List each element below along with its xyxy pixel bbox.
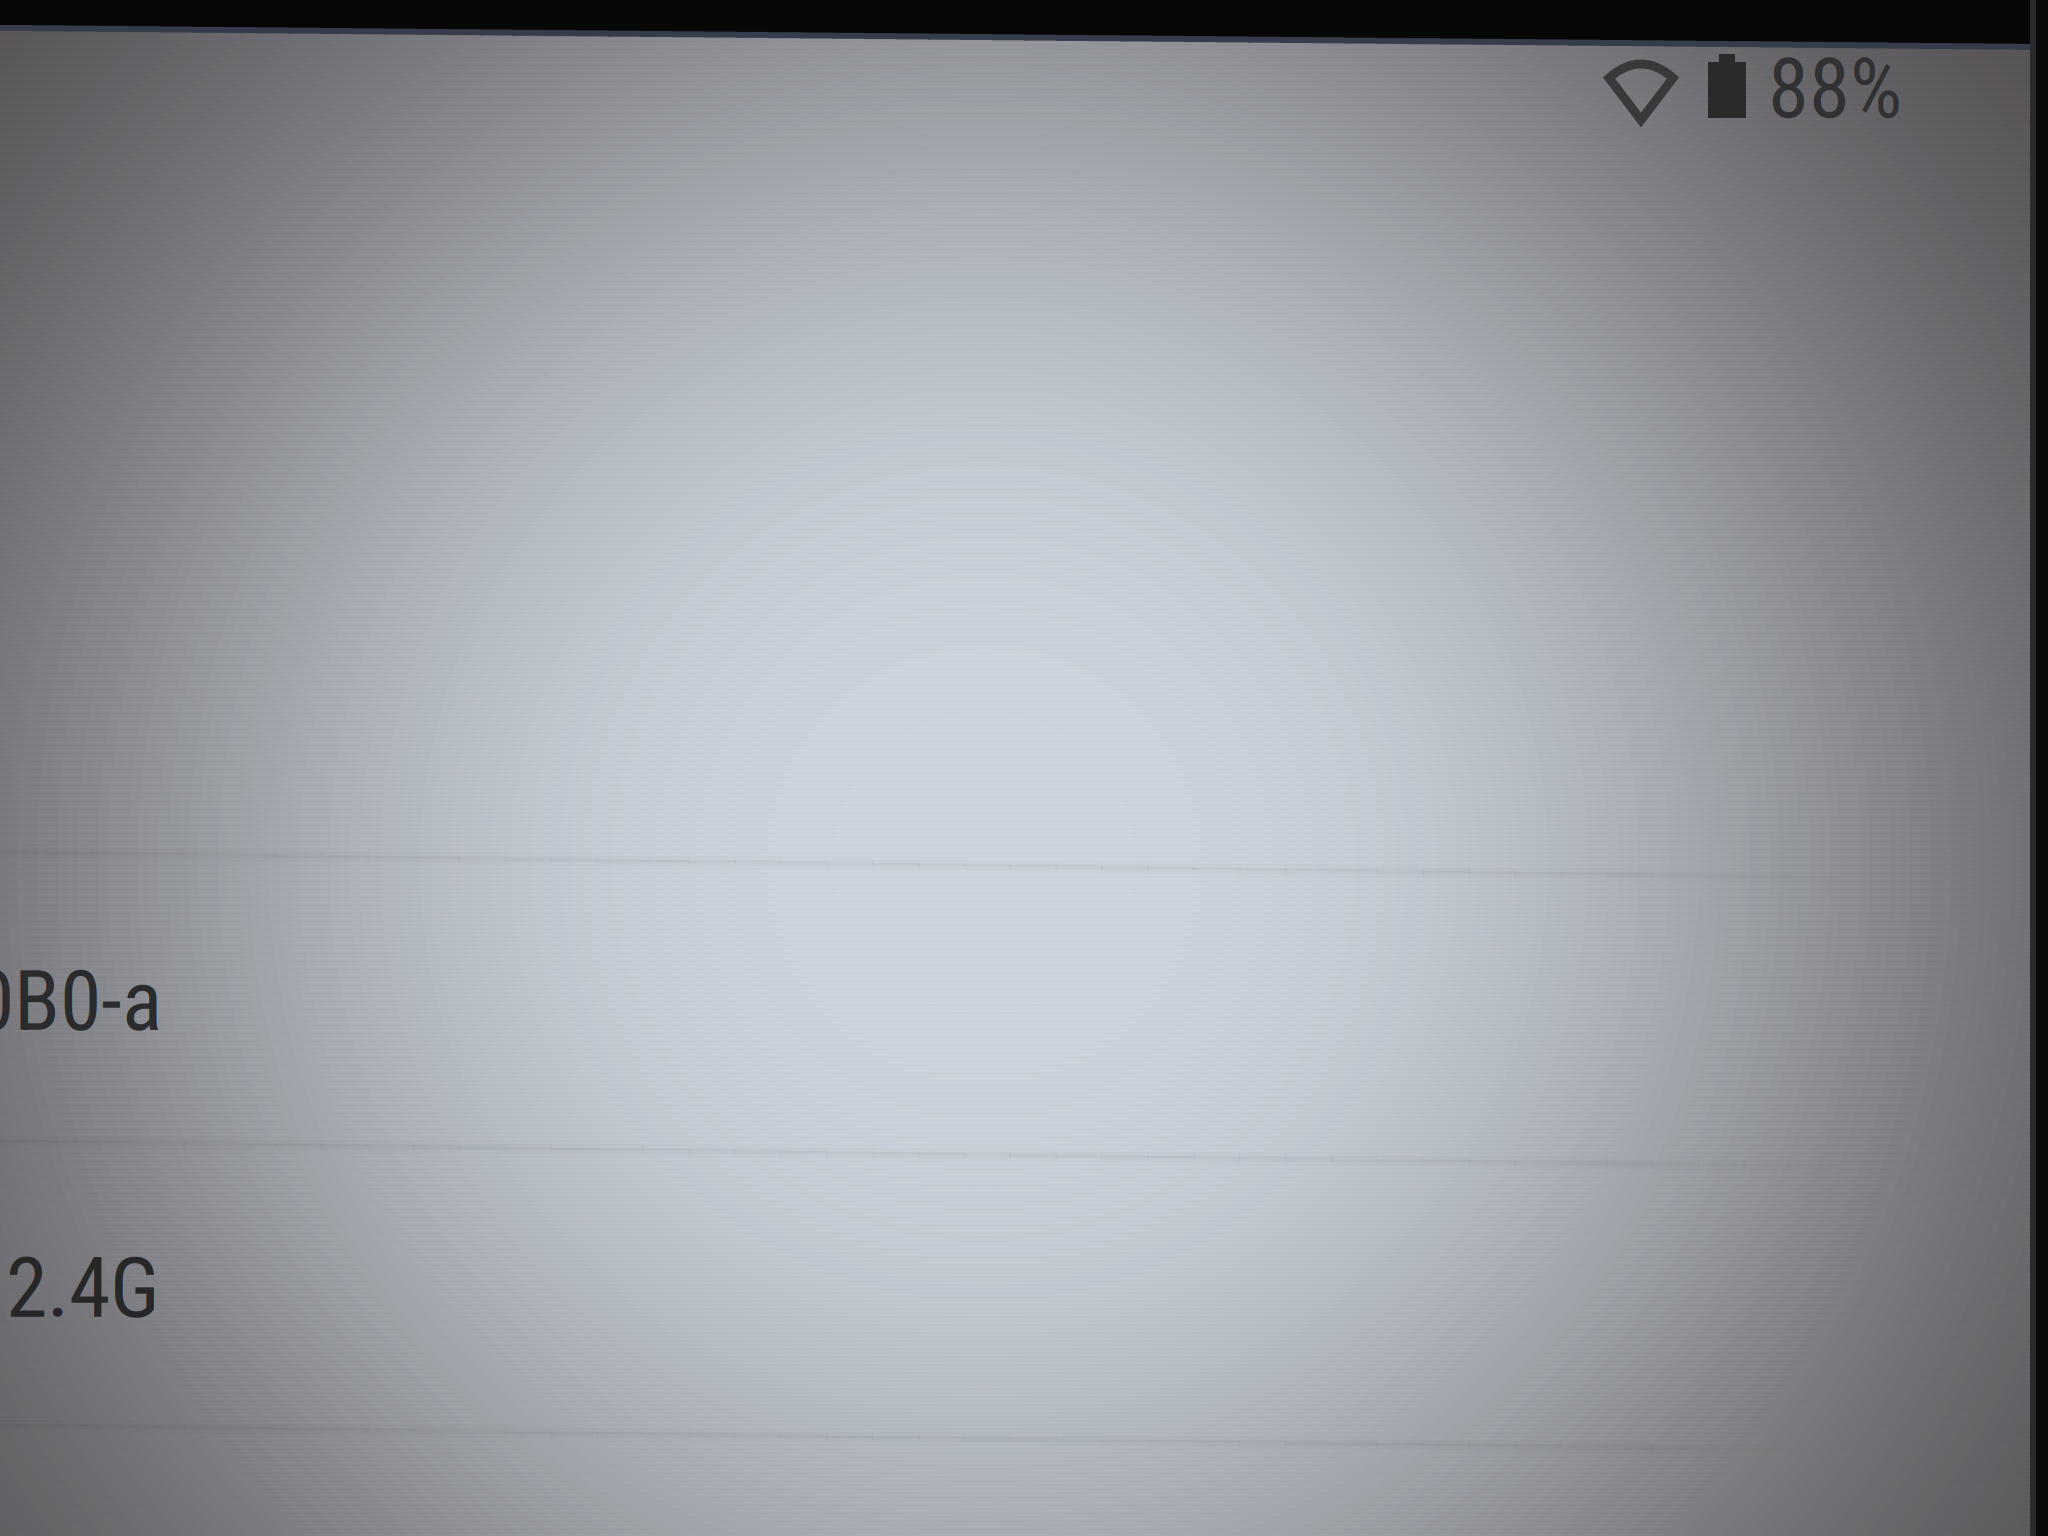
staticText: 88% <box>1768 41 1902 137</box>
button[interactable]: 2.4G <box>6 1146 2006 1430</box>
button[interactable]: Wi-Fi <box>1604 52 1678 126</box>
staticText: 0B0-a <box>0 952 162 1050</box>
staticText: 2.4G <box>6 1239 160 1337</box>
button[interactable]: 0B0-a <box>0 856 1973 1146</box>
button[interactable]: Battery <box>1708 52 1746 126</box>
